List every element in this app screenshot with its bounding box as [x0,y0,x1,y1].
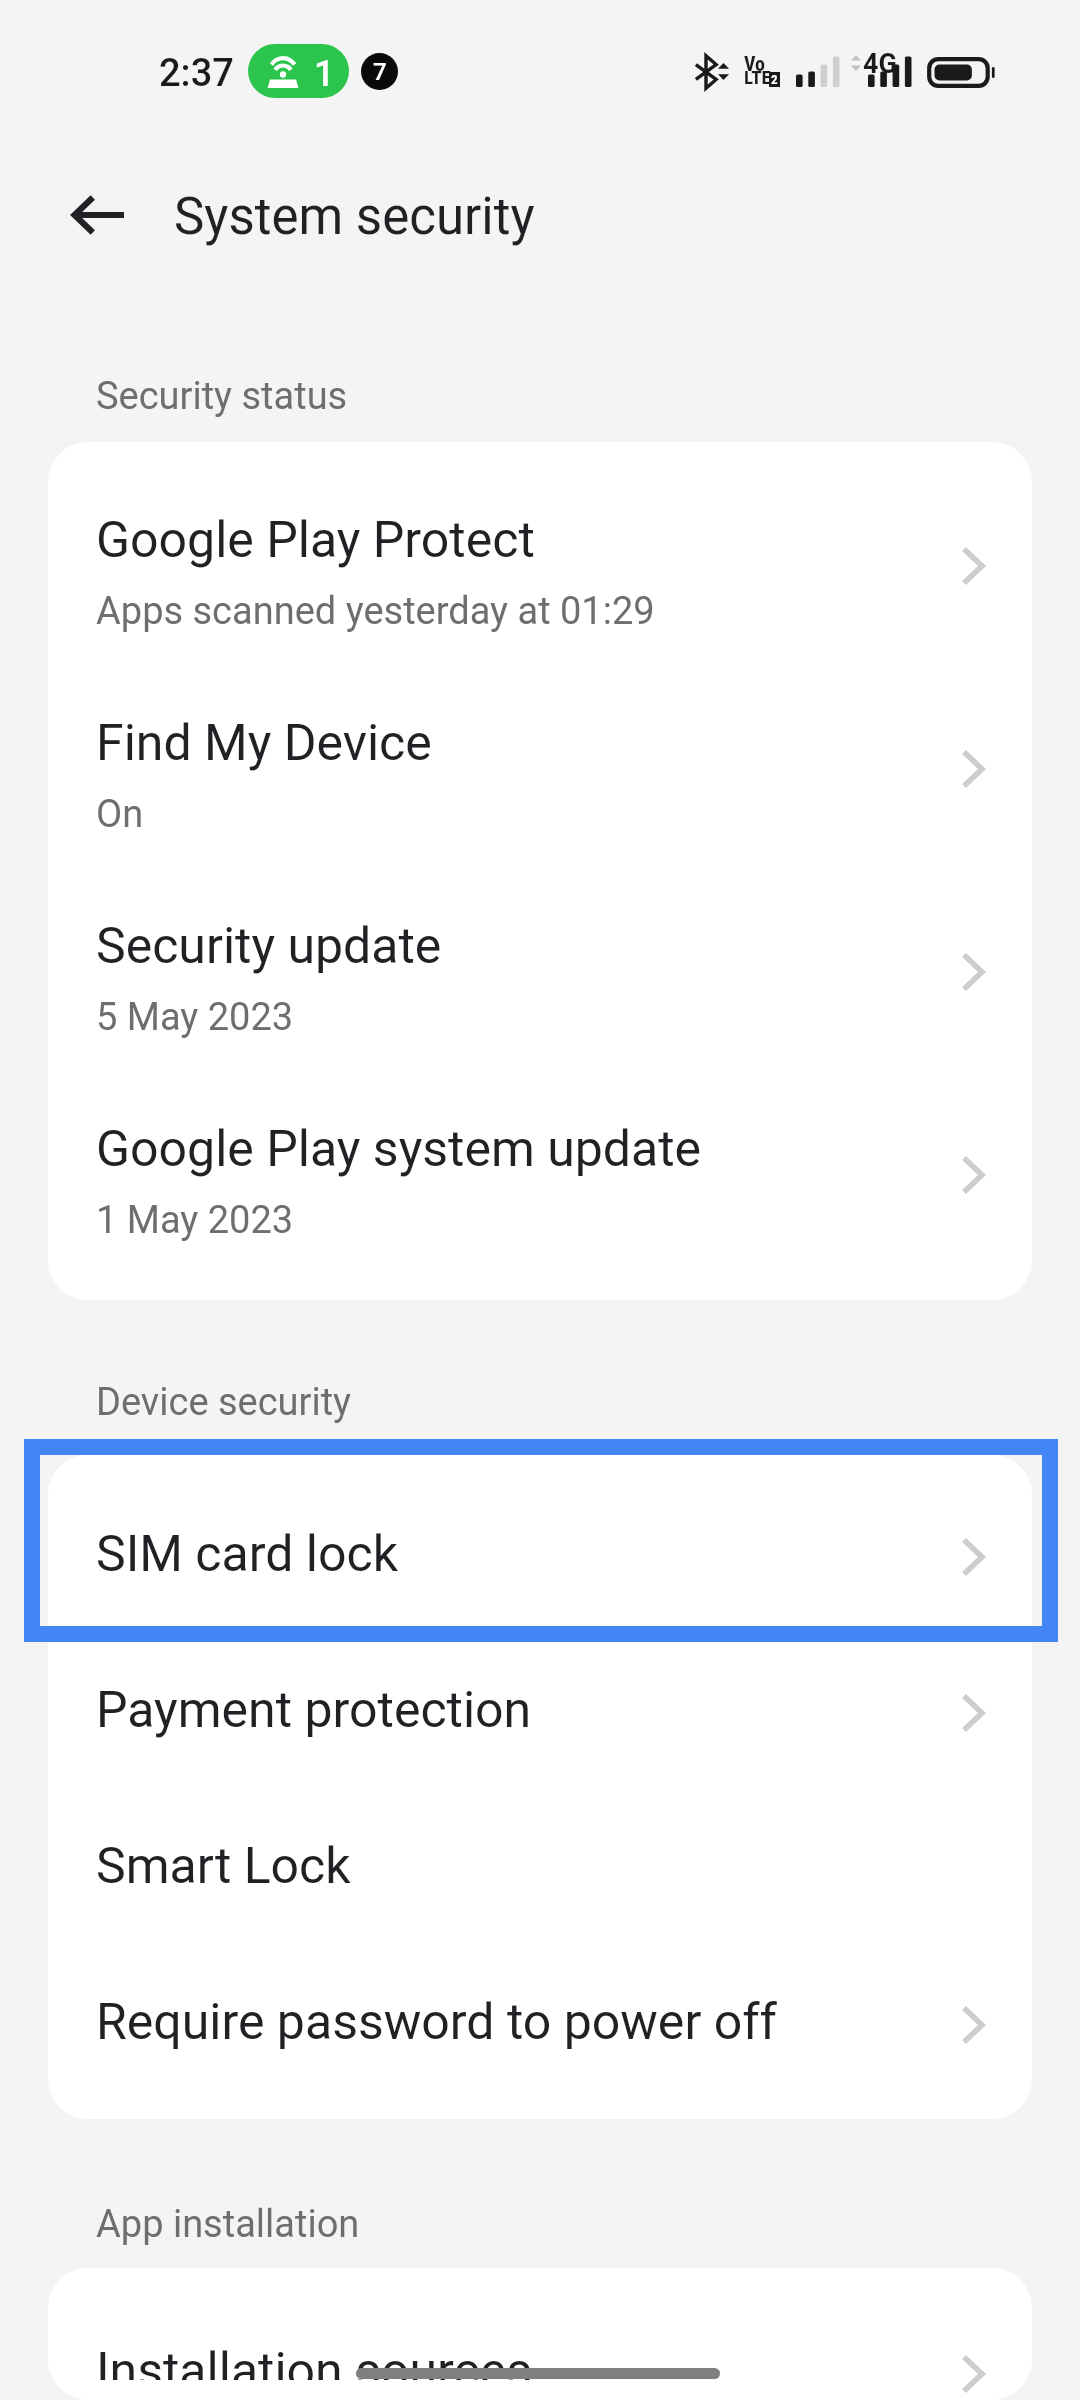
staticText: 1 [314,53,335,95]
staticText: Require password to power off [96,1993,778,2052]
button[interactable]: Back [60,177,136,253]
staticText: Security update [96,917,442,976]
staticText: Installation sources [96,2342,532,2380]
staticText: SIM card lock [96,1525,398,1584]
staticText: 7 [373,58,387,86]
button[interactable]: Google Play Protect [48,465,1032,668]
button[interactable]: SIM card lock [48,1475,1032,1631]
button[interactable]: Smart Lock [48,1787,1032,1943]
staticText: 4G [863,48,897,80]
staticText: 5 May 2023 [96,995,294,1040]
button[interactable]: Installation sources [48,2288,1032,2380]
staticText: 2 [771,72,778,87]
staticText: Smart Lock [96,1837,351,1896]
staticText: Payment protection [96,1681,532,1740]
staticText: Security status [96,374,348,419]
button[interactable]: Payment protection [48,1631,1032,1787]
staticText: 2:37 [159,51,234,96]
staticText: Google Play system update [96,1120,702,1179]
staticText: Vo [744,52,766,75]
staticText: Find My Device [96,714,432,773]
button[interactable]: Find My Device [48,668,1032,871]
staticText: 1 May 2023 [96,1198,294,1243]
staticText: Apps scanned yesterday at 01:29 [96,589,655,634]
button[interactable]: Require password to power off [48,1943,1032,2099]
staticText: Google Play Protect [96,511,535,570]
staticText: Device security [96,1380,352,1425]
staticText: LTE [744,66,771,88]
button[interactable]: Google Play system update [48,1074,1032,1277]
staticText: On [96,792,144,837]
staticText: App installation [96,2202,360,2247]
staticText: System security [174,187,535,247]
button[interactable]: Security update [48,871,1032,1074]
